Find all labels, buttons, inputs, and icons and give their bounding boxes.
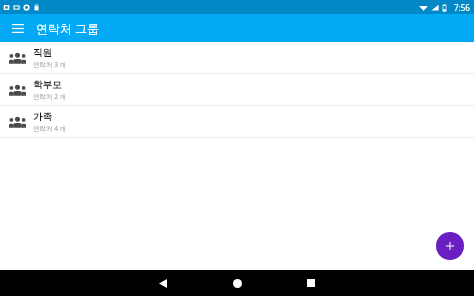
- button[interactable]: 학부모: [0, 74, 474, 105]
- button[interactable]: Back: [126, 270, 200, 296]
- staticText: 학부모: [33, 79, 62, 91]
- button[interactable]: 가족: [0, 106, 474, 137]
- button[interactable]: 직원: [0, 42, 474, 73]
- staticText: 연락처 2 개: [33, 92, 67, 101]
- button[interactable]: Recent apps: [274, 270, 348, 296]
- button[interactable]: Home: [200, 270, 274, 296]
- button[interactable]: Add group: [436, 232, 464, 260]
- staticText: 직원: [33, 47, 52, 59]
- staticText: 연락처 그룹: [36, 20, 100, 36]
- staticText: 가족: [33, 111, 52, 123]
- button[interactable]: Open navigation menu: [8, 18, 28, 38]
- staticText: 연락처 3 개: [33, 60, 67, 69]
- staticText: 연락처 4 개: [33, 124, 67, 133]
- staticText: 7:56: [454, 2, 470, 13]
